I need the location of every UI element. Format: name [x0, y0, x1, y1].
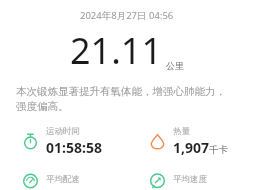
other: Average speed [149, 174, 166, 188]
staticText: 01:58:58 [46, 138, 102, 157]
staticText: 平均配速 [46, 174, 80, 185]
staticText: 1,907千卡 [173, 138, 229, 157]
staticText: 热量 [173, 126, 190, 137]
staticText: 本次锻炼显著提升有氧体能，增强心肺能力，强度偏高。 [16, 85, 232, 113]
button[interactable]: Calories burned [127, 124, 254, 159]
other: Average pace [22, 174, 39, 188]
staticText: 平均速度 [173, 174, 207, 185]
button[interactable]: Average speed [127, 172, 254, 190]
button[interactable]: Average pace [0, 172, 127, 190]
staticText: 公里 [166, 60, 184, 71]
button[interactable]: Exercise duration [0, 124, 127, 159]
staticText: 21.11 [70, 26, 163, 75]
staticText: 运动时间 [46, 126, 80, 137]
staticText: 2024年8月27日 04:56 [80, 9, 174, 22]
other: Calories burned [149, 133, 166, 150]
other: Exercise duration [22, 133, 39, 150]
